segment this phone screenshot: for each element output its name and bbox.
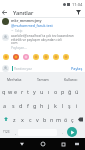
staticText: ğ (68, 88, 72, 95)
button[interactable]: Back (0, 8, 9, 17)
button[interactable]: Paylaş (71, 66, 83, 71)
button[interactable]: g (31, 98, 38, 112)
staticText: ?123 (3, 130, 10, 134)
staticText: s (12, 102, 15, 109)
button[interactable]: Filter (74, 8, 83, 17)
staticText: q (2, 88, 6, 95)
button[interactable]: v (34, 112, 41, 126)
button[interactable]: r (19, 84, 25, 98)
button[interactable]: z (10, 112, 18, 126)
staticText: ç (71, 116, 74, 123)
button[interactable]: s (9, 98, 17, 112)
staticText: Paylaşan... (11, 46, 27, 50)
button[interactable]: j (45, 98, 52, 112)
staticText: z (13, 116, 16, 123)
staticText: k (54, 102, 57, 109)
staticText: w (8, 88, 13, 95)
button[interactable]: o (52, 84, 59, 98)
button[interactable]: ü (73, 84, 80, 98)
staticText: e (14, 88, 18, 95)
button[interactable]: Home (32, 138, 53, 150)
button[interactable]: Back (12, 138, 32, 150)
button[interactable]: Emoji (51, 53, 61, 61)
button[interactable]: x (18, 112, 26, 126)
staticText: Kullanıcı (64, 77, 78, 82)
button[interactable]: Emoji (31, 53, 41, 61)
button[interactable]: Backspace (76, 112, 84, 126)
button[interactable]: Emoji (21, 53, 31, 61)
staticText: Tamam (37, 77, 49, 82)
staticText: j (48, 102, 50, 109)
button[interactable]: e (13, 84, 19, 98)
button[interactable]: y (31, 84, 38, 98)
button[interactable]: i (73, 98, 80, 112)
staticText: x (21, 116, 24, 123)
staticText: ş (68, 102, 71, 109)
button[interactable]: a (1, 98, 9, 112)
button[interactable]: Send (67, 127, 77, 137)
staticText: 11:04 (72, 2, 83, 7)
button[interactable]: m (55, 112, 62, 126)
staticText: n (50, 116, 54, 123)
staticText: m (56, 116, 62, 123)
button[interactable]: ğ (66, 84, 73, 98)
button[interactable]: c (26, 112, 34, 126)
staticText: ı (48, 88, 50, 95)
staticText: . (62, 130, 63, 135)
staticText: mkr_mmmm:jmy (11, 18, 42, 23)
button[interactable]: l (59, 98, 66, 112)
button[interactable]: d (17, 98, 24, 112)
staticText: Paylaş (71, 66, 83, 71)
staticText: ··· Takip (11, 29, 23, 33)
staticText: o (54, 88, 58, 95)
staticText: acarbilet@onsalhost'ta çok tez kazandıra… (11, 34, 74, 44)
staticText: @muhammed_faruk.test (11, 23, 53, 28)
button[interactable]: , (12, 126, 18, 138)
button[interactable]: u (38, 84, 45, 98)
staticText: i (76, 102, 78, 109)
staticText: , (15, 130, 16, 135)
button[interactable]: ö (62, 112, 69, 126)
button[interactable]: k (52, 98, 59, 112)
button[interactable]: b (41, 112, 48, 126)
staticText: h (40, 102, 44, 109)
button[interactable]: t (25, 84, 31, 98)
staticText: u (40, 88, 44, 95)
button[interactable]: f (24, 98, 31, 112)
button[interactable]: Emoji (61, 53, 71, 61)
button[interactable]: ş (66, 98, 73, 112)
button[interactable]: ?123 (0, 126, 12, 138)
staticText: d (19, 102, 23, 109)
button[interactable]: Recents (53, 138, 74, 150)
staticText: b (43, 116, 47, 123)
button[interactable]: Tamam (29, 74, 57, 84)
staticText: Merhaba (7, 77, 22, 82)
staticText: ü (75, 88, 79, 95)
button[interactable]: Emoji (1, 53, 11, 61)
button[interactable]: Kullanıcı (57, 74, 85, 84)
button[interactable]: ç (69, 112, 76, 126)
button[interactable]: Shift (1, 112, 10, 126)
staticText: v (36, 116, 39, 123)
staticText: ö (64, 116, 68, 123)
button[interactable]: p (59, 84, 66, 98)
button[interactable]: n (48, 112, 55, 126)
staticText: y (33, 88, 36, 95)
staticText: l (62, 102, 64, 109)
button[interactable]: Emoji (41, 53, 51, 61)
button[interactable]: Emoji (11, 53, 21, 61)
staticText: c (29, 116, 32, 123)
staticText: f (27, 102, 29, 109)
button[interactable]: ı (45, 84, 52, 98)
button[interactable]: Hide keyboard (73, 140, 81, 148)
button[interactable]: h (38, 98, 45, 112)
staticText: g (33, 102, 37, 109)
button[interactable]: q (1, 84, 7, 98)
staticText: p (61, 88, 65, 95)
button[interactable]: w (7, 84, 13, 98)
staticText: Yanıtını yaz (14, 66, 32, 71)
button[interactable]: Merhaba (0, 74, 29, 84)
staticText: Yanıtlar (13, 9, 34, 17)
